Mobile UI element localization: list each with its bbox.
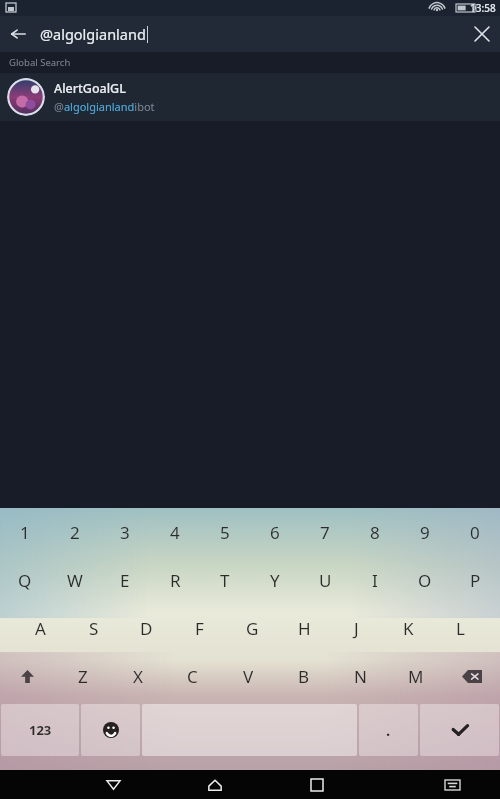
button[interactable]: J bbox=[330, 604, 382, 652]
staticText: AlertGoalGL bbox=[54, 80, 126, 97]
staticText: Z bbox=[78, 665, 88, 688]
staticText: 13:58 bbox=[470, 1, 496, 15]
staticText: R bbox=[170, 569, 181, 592]
button[interactable]: D bbox=[120, 604, 173, 652]
button[interactable]: Switch keyboard bbox=[420, 770, 484, 799]
button[interactable]: Period bbox=[359, 704, 418, 756]
button[interactable]: K bbox=[382, 604, 434, 652]
staticText: Global Search bbox=[9, 56, 71, 69]
button[interactable]: P bbox=[450, 556, 500, 604]
staticText: Y bbox=[270, 569, 280, 592]
button[interactable]: Home bbox=[183, 770, 247, 799]
button[interactable]: Back bbox=[81, 770, 145, 799]
button[interactable]: Clear bbox=[464, 16, 500, 52]
button[interactable]: Backspace bbox=[444, 652, 500, 700]
staticText: 7 bbox=[320, 521, 330, 544]
button[interactable]: E bbox=[100, 556, 150, 604]
staticText: @algolgianland bbox=[40, 24, 146, 44]
button[interactable]: M bbox=[388, 652, 444, 700]
button[interactable]: 0 bbox=[450, 508, 500, 556]
button[interactable]: H bbox=[278, 604, 330, 652]
staticText: H bbox=[298, 617, 311, 640]
button[interactable]: Enter bbox=[420, 704, 499, 756]
staticText: Q bbox=[18, 569, 32, 592]
staticText: 5 bbox=[220, 521, 230, 544]
staticText: 6 bbox=[270, 521, 280, 544]
button[interactable]: 6 bbox=[250, 508, 300, 556]
button[interactable]: 3 bbox=[100, 508, 150, 556]
staticText: . bbox=[386, 720, 391, 740]
button[interactable]: T bbox=[200, 556, 250, 604]
button[interactable]: 2 bbox=[50, 508, 100, 556]
staticText: 3 bbox=[120, 521, 130, 544]
staticText: S bbox=[89, 617, 99, 640]
button[interactable]: R bbox=[150, 556, 200, 604]
button[interactable]: B bbox=[276, 652, 332, 700]
button[interactable]: F bbox=[173, 604, 226, 652]
staticText: X bbox=[133, 665, 143, 688]
button[interactable]: 8 bbox=[350, 508, 400, 556]
button[interactable]: Q bbox=[0, 556, 50, 604]
staticText: M bbox=[408, 665, 424, 688]
staticText: V bbox=[243, 665, 254, 688]
staticText: 8 bbox=[370, 521, 380, 544]
staticText: B bbox=[298, 665, 310, 688]
button[interactable]: 9 bbox=[400, 508, 450, 556]
button[interactable]: 7 bbox=[300, 508, 350, 556]
button[interactable]: Z bbox=[55, 652, 110, 700]
staticText: W bbox=[67, 569, 83, 592]
staticText: F bbox=[195, 617, 204, 640]
button[interactable]: I bbox=[350, 556, 400, 604]
staticText: G bbox=[246, 617, 259, 640]
staticText: C bbox=[187, 665, 198, 688]
button[interactable]: X bbox=[110, 652, 165, 700]
staticText: J bbox=[354, 617, 359, 640]
staticText: 2 bbox=[70, 521, 80, 544]
button[interactable]: V bbox=[220, 652, 276, 700]
button[interactable]: N bbox=[332, 652, 388, 700]
staticText: D bbox=[140, 617, 153, 640]
staticText: @algolgianlandibot bbox=[54, 99, 155, 114]
button[interactable]: 5 bbox=[200, 508, 250, 556]
button[interactable]: G bbox=[226, 604, 278, 652]
button[interactable]: 4 bbox=[150, 508, 200, 556]
staticText: L bbox=[456, 617, 465, 640]
staticText: 4 bbox=[170, 521, 180, 544]
staticText: K bbox=[403, 617, 414, 640]
staticText: A bbox=[35, 617, 46, 640]
button[interactable]: U bbox=[300, 556, 350, 604]
button[interactable]: 1 bbox=[0, 508, 50, 556]
button[interactable]: Shift bbox=[0, 652, 55, 700]
staticText: 123 bbox=[29, 721, 52, 739]
staticText: T bbox=[220, 569, 230, 592]
button[interactable]: Emoji bbox=[81, 704, 140, 756]
button[interactable]: 123 bbox=[1, 704, 79, 756]
staticText: 0 bbox=[470, 521, 480, 544]
staticText: P bbox=[470, 569, 481, 592]
staticText: U bbox=[319, 569, 332, 592]
button[interactable]: Y bbox=[250, 556, 300, 604]
button[interactable]: C bbox=[165, 652, 220, 700]
button[interactable]: W bbox=[50, 556, 100, 604]
staticText: N bbox=[354, 665, 367, 688]
button[interactable]: Recents bbox=[285, 770, 349, 799]
button[interactable]: S bbox=[67, 604, 120, 652]
button[interactable]: A bbox=[14, 604, 67, 652]
staticText: 1 bbox=[20, 521, 30, 544]
button[interactable]: L bbox=[434, 604, 486, 652]
staticText: E bbox=[120, 569, 130, 592]
button[interactable]: Back bbox=[0, 16, 36, 52]
button[interactable]: O bbox=[400, 556, 450, 604]
staticText: O bbox=[418, 569, 432, 592]
staticText: I bbox=[372, 569, 378, 592]
button[interactable]: AlertGoalGL bbox=[0, 73, 500, 121]
staticText: 9 bbox=[420, 521, 430, 544]
